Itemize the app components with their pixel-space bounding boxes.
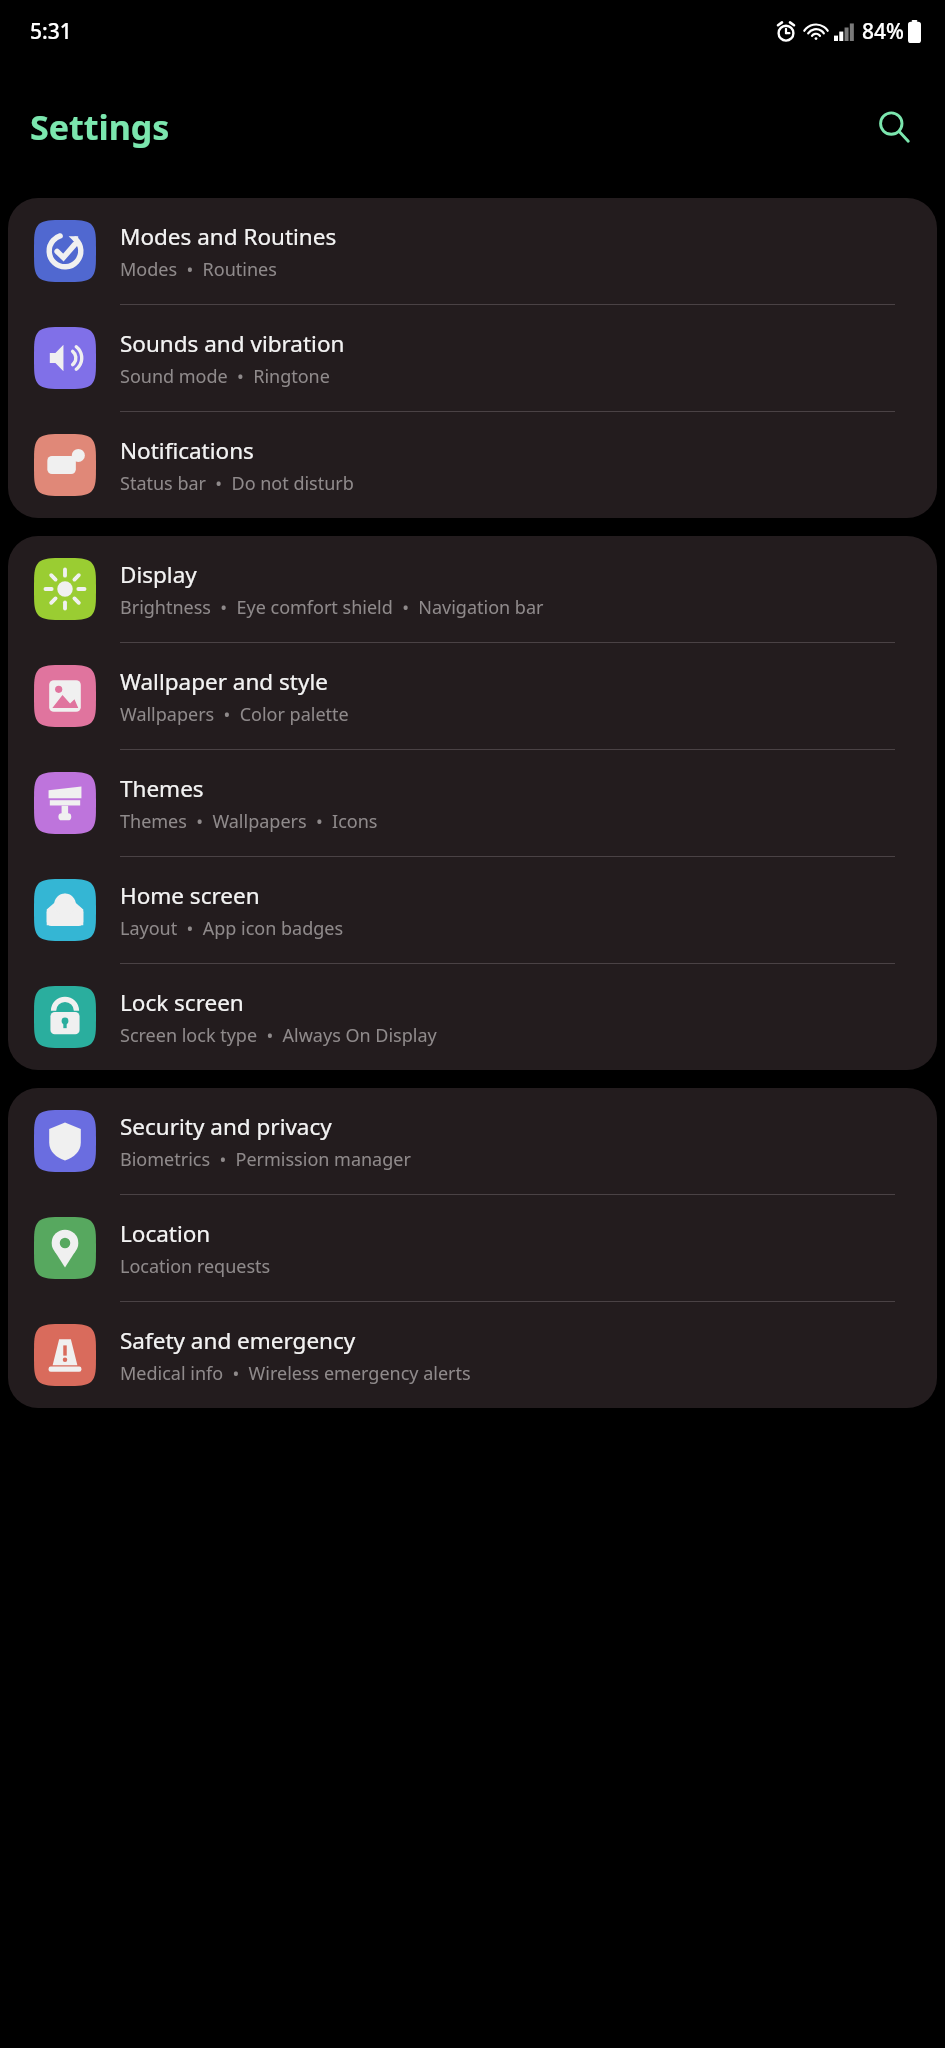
button[interactable]: Lock screen [8,964,937,1070]
staticText: Wallpaper and style [120,666,328,697]
staticText: Modes and Routines [120,221,337,252]
staticText: Location requests [120,1254,271,1279]
button[interactable]: Search [865,98,923,156]
staticText: Notifications [120,435,254,466]
staticText: Themes • Wallpapers • Icons [120,809,378,834]
staticText: Brightness • Eye comfort shield • Naviga… [120,595,544,620]
staticText: Themes [120,773,204,804]
staticText: Medical info • Wireless emergency alerts [120,1361,471,1386]
button[interactable]: Safety and emergency [8,1302,937,1408]
button[interactable]: Sounds and vibration [8,305,937,411]
button[interactable]: Themes [8,750,937,856]
button[interactable]: Display [8,536,937,642]
button[interactable]: Home screen [8,857,937,963]
button[interactable]: Modes and Routines [8,198,937,304]
staticText: Wallpapers • Color palette [120,702,349,727]
staticText: Sounds and vibration [120,328,345,359]
staticText: Biometrics • Permission manager [120,1147,411,1172]
staticText: Screen lock type • Always On Display [120,1023,437,1048]
staticText: Safety and emergency [120,1325,356,1356]
staticText: 5:31 [30,17,72,46]
staticText: Home screen [120,880,260,911]
staticText: Sound mode • Ringtone [120,364,330,389]
staticText: Display [120,559,197,590]
staticText: Location [120,1218,211,1249]
staticText: Security and privacy [120,1111,332,1142]
button[interactable]: Security and privacy [8,1088,937,1194]
staticText: Settings [30,104,170,150]
button[interactable]: Notifications [8,412,937,518]
button[interactable]: Location [8,1195,937,1301]
staticText: Lock screen [120,987,244,1018]
staticText: 84% [862,17,904,46]
staticText: Status bar • Do not disturb [120,471,354,496]
staticText: Modes • Routines [120,257,277,282]
staticText: Layout • App icon badges [120,916,344,941]
button[interactable]: Wallpaper and style [8,643,937,749]
